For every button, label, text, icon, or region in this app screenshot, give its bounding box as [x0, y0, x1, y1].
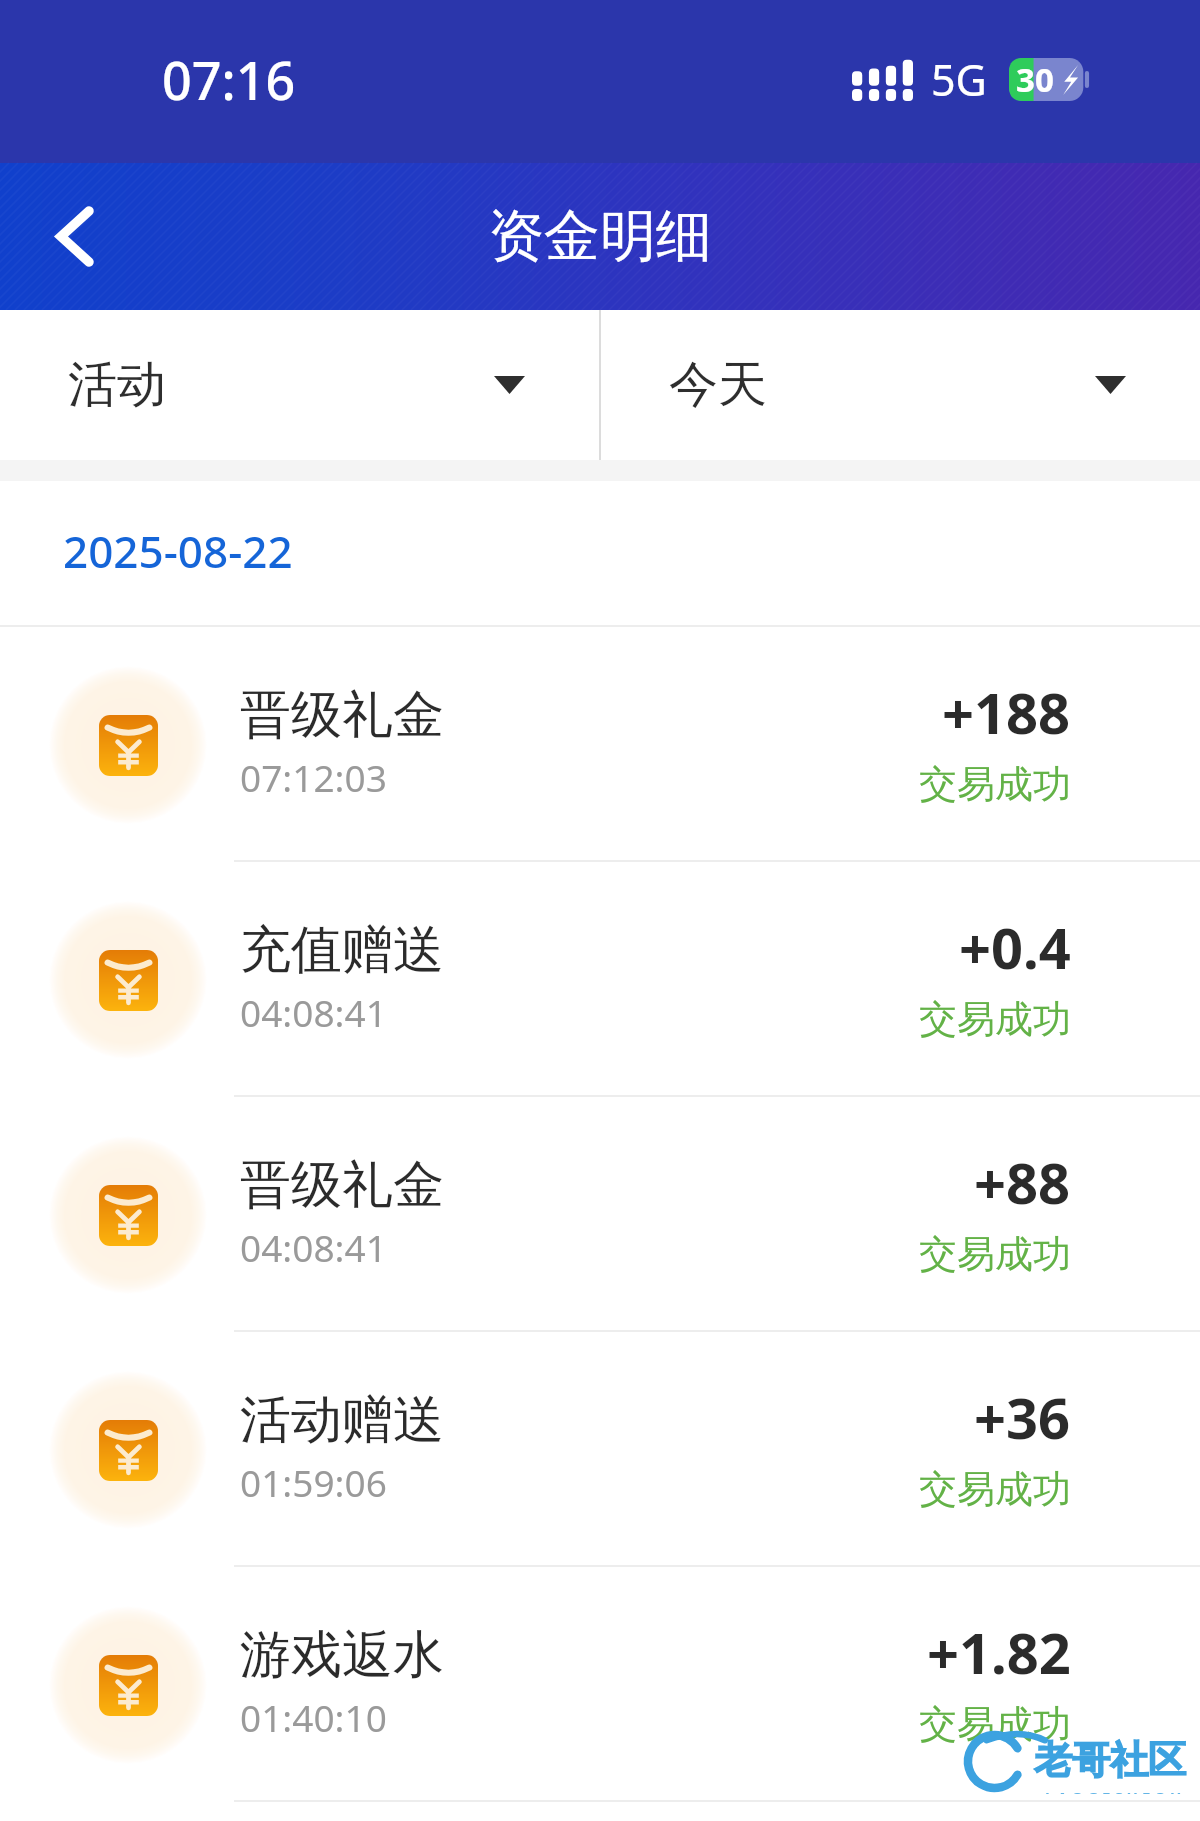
button[interactable]: 今天	[601, 310, 1200, 460]
staticText: +0.4	[959, 909, 1071, 985]
staticText: 交易成功	[919, 1465, 1071, 1513]
staticText: 游戏返水	[240, 1623, 444, 1687]
staticText: 交易成功	[919, 1230, 1071, 1278]
staticText: +1.82	[927, 1614, 1071, 1690]
staticText: 30	[1016, 57, 1054, 100]
staticText: 01:59:06	[240, 1457, 387, 1507]
button[interactable]: 晋级礼金	[0, 1097, 1200, 1332]
staticText: 晋级礼金	[240, 1153, 444, 1217]
staticText: +36	[974, 1379, 1071, 1455]
staticText: 今天	[669, 354, 767, 416]
staticText: 活动赠送	[240, 1388, 444, 1452]
staticText: 2025-08-22	[63, 521, 293, 581]
staticText: 充值赠送	[240, 918, 444, 982]
staticText: 07:16	[162, 44, 296, 115]
button[interactable]: 晋级礼金	[0, 627, 1200, 862]
staticText: 活动	[68, 354, 166, 416]
staticText: 04:08:41	[240, 987, 387, 1037]
staticText: +188	[942, 674, 1071, 750]
button[interactable]: 游戏返水	[0, 1567, 1200, 1802]
staticText: 交易成功	[919, 995, 1071, 1043]
staticText: 04:08:41	[240, 1222, 387, 1272]
button[interactable]: 活动赠送	[0, 1332, 1200, 1567]
staticText: 老哥社区	[1034, 1736, 1186, 1784]
button[interactable]: Back	[0, 163, 150, 310]
staticText: 01:40:10	[240, 1692, 387, 1742]
staticText: 资金明细	[488, 201, 712, 272]
staticText: L A O G E S H E Q U	[1045, 1787, 1182, 1794]
staticText: 交易成功	[919, 760, 1071, 808]
staticText: 交易成功	[919, 1700, 1071, 1748]
staticText: +88	[974, 1144, 1071, 1220]
button[interactable]: 活动	[0, 310, 599, 460]
staticText: 5G	[931, 50, 987, 109]
button[interactable]: 充值赠送	[0, 862, 1200, 1097]
staticText: 晋级礼金	[240, 683, 444, 747]
staticText: 07:12:03	[240, 752, 387, 802]
